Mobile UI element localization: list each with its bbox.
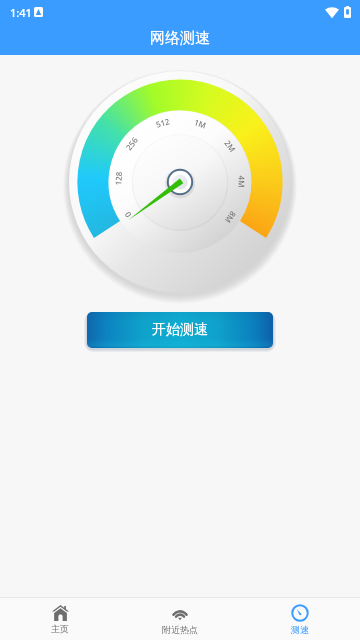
button[interactable]: 测速	[240, 598, 360, 640]
staticText: 1:41	[10, 5, 32, 20]
other: 测速	[291, 604, 309, 622]
button[interactable]: 开始测速	[87, 312, 273, 348]
other: 附近热点	[171, 604, 189, 622]
button[interactable]: 附近热点	[120, 598, 240, 640]
staticText: 附近热点	[162, 624, 198, 635]
staticText: 开始测速	[152, 321, 208, 339]
staticText: 测速	[291, 624, 309, 635]
staticText: 网络测速	[150, 29, 210, 48]
button[interactable]: 主页	[0, 598, 120, 640]
staticText: 主页	[51, 623, 69, 634]
other: 主页	[52, 605, 69, 621]
